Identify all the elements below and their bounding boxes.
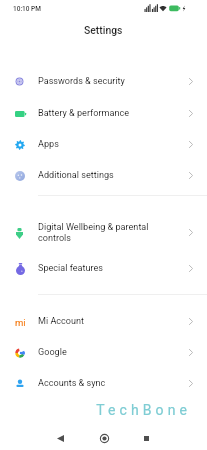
- staticText: Additional settings: [38, 170, 114, 181]
- button[interactable]: Apps: [0, 129, 207, 160]
- button[interactable]: Back: [49, 427, 71, 449]
- staticText: Apps: [38, 139, 59, 150]
- button[interactable]: Special features: [0, 253, 207, 284]
- staticText: Mi Account: [38, 316, 85, 327]
- staticText: Battery & performance: [38, 108, 130, 119]
- staticText: Google: [38, 347, 67, 358]
- button[interactable]: Accounts & sync: [0, 368, 207, 399]
- button[interactable]: Additional settings: [0, 160, 207, 191]
- button[interactable]: Home: [93, 427, 115, 449]
- staticText: Passwords & security: [38, 76, 125, 87]
- button[interactable]: Google: [0, 337, 207, 368]
- staticText: Special features: [38, 263, 104, 274]
- button[interactable]: Battery & performance: [0, 98, 207, 129]
- staticText: Digital Wellbeing & parental controls: [38, 222, 149, 244]
- staticText: TechBone: [0, 402, 191, 418]
- staticText: Accounts & sync: [38, 378, 106, 389]
- button[interactable]: Recent apps: [135, 427, 157, 449]
- button[interactable]: Passwords & security: [0, 66, 207, 97]
- button[interactable]: Digital Wellbeing & parental controls: [0, 217, 207, 248]
- staticText: Settings: [84, 24, 123, 36]
- staticText: 10:10 PM: [13, 5, 41, 13]
- button[interactable]: mi: [0, 306, 207, 337]
- staticText: mi: [15, 317, 26, 326]
